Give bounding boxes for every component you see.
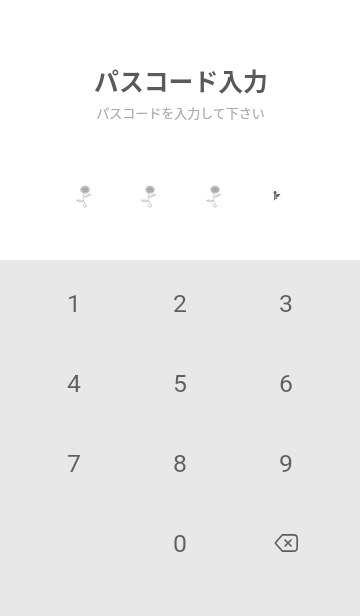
button[interactable] bbox=[245, 186, 310, 208]
button[interactable]: Backspace bbox=[233, 503, 339, 583]
staticText: 6 bbox=[279, 369, 293, 398]
button[interactable]: 7 bbox=[21, 423, 127, 503]
staticText: 2 bbox=[173, 289, 187, 318]
staticText: パスコードを入力して下さい bbox=[96, 103, 265, 122]
button[interactable] bbox=[50, 186, 115, 208]
button[interactable]: 1 bbox=[21, 263, 127, 343]
button[interactable]: 5 bbox=[127, 343, 233, 423]
staticText: 9 bbox=[279, 449, 293, 478]
button[interactable]: 0 bbox=[127, 503, 233, 583]
button[interactable]: 8 bbox=[127, 423, 233, 503]
button[interactable]: 9 bbox=[233, 423, 339, 503]
button[interactable]: 3 bbox=[233, 263, 339, 343]
button[interactable] bbox=[115, 186, 180, 208]
staticText: 7 bbox=[67, 449, 81, 478]
staticText: 4 bbox=[67, 369, 81, 398]
staticText: 3 bbox=[279, 289, 293, 318]
staticText: 0 bbox=[173, 529, 187, 558]
staticText: 8 bbox=[173, 449, 187, 478]
other: Backspace bbox=[274, 534, 298, 552]
button[interactable]: 2 bbox=[127, 263, 233, 343]
button[interactable]: 6 bbox=[233, 343, 339, 423]
staticText: 1 bbox=[67, 289, 81, 318]
staticText: パスコード入力 bbox=[94, 62, 268, 98]
staticText: 5 bbox=[173, 369, 187, 398]
button[interactable] bbox=[180, 186, 245, 208]
button[interactable]: 4 bbox=[21, 343, 127, 423]
